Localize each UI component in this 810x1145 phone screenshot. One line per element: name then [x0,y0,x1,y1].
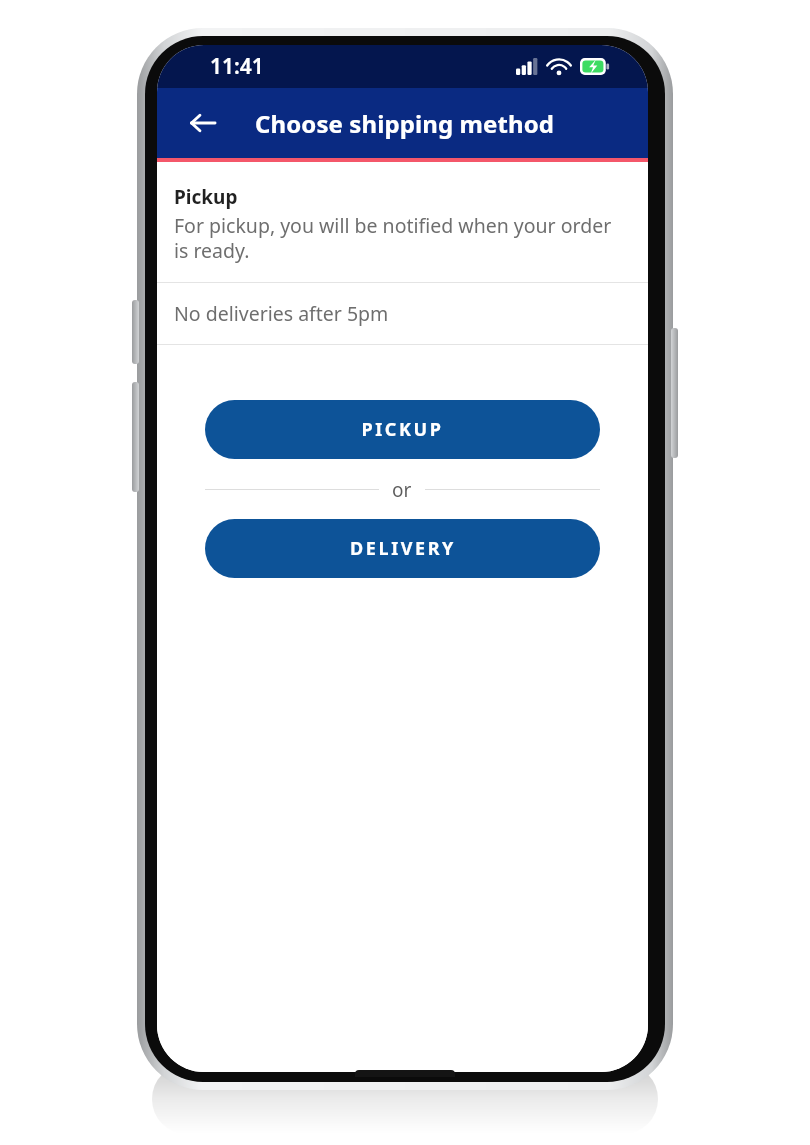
staticText: DELIVERY [350,536,456,561]
staticText: 11:41 [210,52,264,81]
staticText: No deliveries after 5pm [174,300,389,327]
staticText: or [392,477,412,501]
button[interactable]: DELIVERY [205,519,600,578]
staticText: PICKUP [361,417,444,442]
staticText: Pickup [174,184,238,210]
button[interactable]: PICKUP [205,400,600,459]
staticText: For pickup, you will be notified when yo… [174,212,628,263]
button[interactable]: No deliveries after 5pm [157,283,648,344]
staticText: Choose shipping method [255,107,555,140]
button[interactable]: Back [179,99,227,147]
